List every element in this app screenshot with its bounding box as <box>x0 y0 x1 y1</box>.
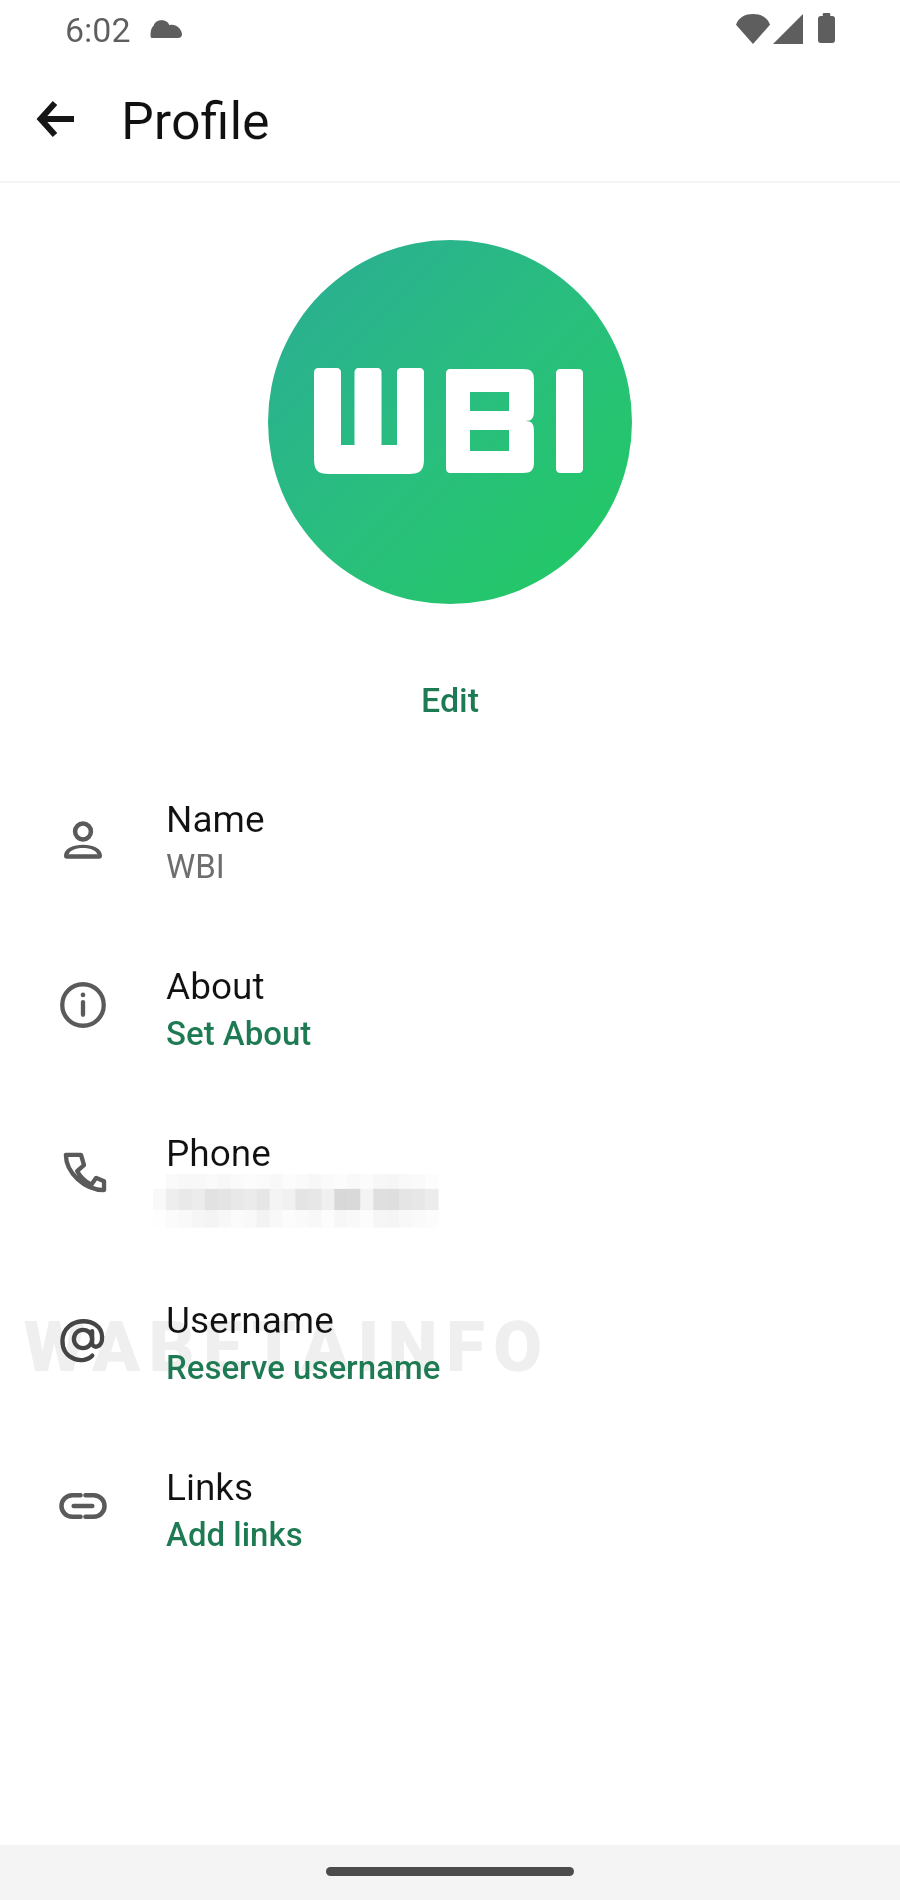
button[interactable]: Username <box>0 1282 900 1402</box>
staticText: WBI <box>166 847 225 886</box>
button[interactable]: Name <box>0 781 900 901</box>
staticText: Username <box>166 1299 334 1342</box>
button[interactable]: Links <box>0 1449 900 1569</box>
staticText: Name <box>166 798 265 841</box>
staticText: WABETAINFO <box>24 1306 551 1388</box>
staticText: Profile <box>121 90 270 152</box>
staticText: 6:02 <box>65 10 131 50</box>
staticText: Set About <box>166 1014 312 1053</box>
staticText: Edit <box>421 680 480 720</box>
staticText: Add links <box>166 1515 303 1554</box>
button[interactable]: Back <box>25 87 89 151</box>
button[interactable]: About <box>0 948 900 1068</box>
staticText: Reserve username <box>166 1348 441 1387</box>
staticText: About <box>166 965 265 1008</box>
button[interactable]: Phone <box>0 1115 900 1235</box>
staticText: Phone <box>166 1132 271 1175</box>
button[interactable]: Edit <box>397 670 504 730</box>
staticText: Links <box>166 1466 254 1509</box>
button[interactable]: Profile photo <box>268 240 632 604</box>
